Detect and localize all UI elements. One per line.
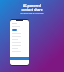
staticText: the smart way to share info <box>20 12 44 14</box>
staticText: AI-powered contact share <box>21 4 43 11</box>
